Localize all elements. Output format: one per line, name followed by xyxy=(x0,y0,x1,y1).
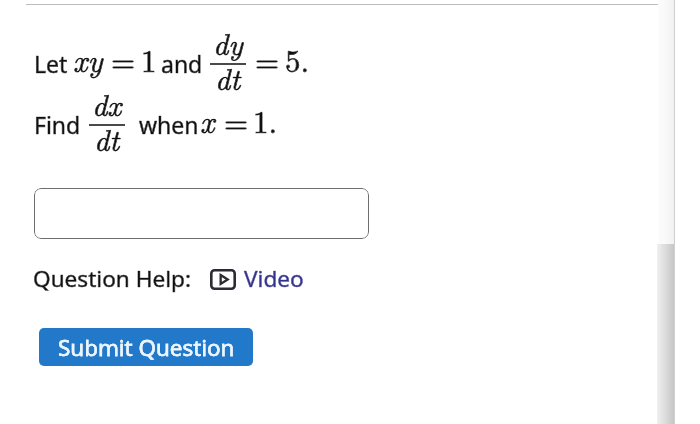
staticText: 1. xyxy=(253,98,278,142)
button[interactable]: Video xyxy=(210,263,304,294)
staticText: = xyxy=(224,98,249,142)
button[interactable]: Submit Question xyxy=(39,328,253,366)
staticText: dt xyxy=(94,117,120,159)
staticText: 5. xyxy=(285,37,310,81)
staticText: x xyxy=(200,98,215,142)
staticText: = xyxy=(111,37,136,81)
staticText: Video xyxy=(244,263,304,294)
staticText: = xyxy=(255,37,280,81)
staticText: = xyxy=(255,37,280,81)
staticText: 1. xyxy=(253,98,278,142)
staticText: 1 xyxy=(141,37,157,81)
staticText: dx xyxy=(92,82,122,124)
staticText: Video xyxy=(244,263,304,294)
staticText: when xyxy=(139,109,199,140)
staticText: xy xyxy=(73,37,103,81)
staticText: dx xyxy=(92,82,122,124)
staticText: 1 xyxy=(141,37,157,81)
staticText: dt xyxy=(94,117,120,159)
staticText: 5. xyxy=(285,37,310,81)
staticText: Let xyxy=(34,48,68,79)
staticText: and xyxy=(161,48,203,79)
staticText: Submit Question xyxy=(58,332,235,363)
staticText: x xyxy=(200,98,215,142)
staticText: = xyxy=(111,37,136,81)
staticText: Question Help: xyxy=(33,263,191,294)
staticText: Find xyxy=(34,109,81,140)
staticText: when xyxy=(139,109,199,140)
staticText: Submit Question xyxy=(58,332,235,363)
staticText: dt xyxy=(215,56,241,98)
staticText: = xyxy=(224,98,249,142)
staticText: xy xyxy=(73,37,103,81)
staticText: and xyxy=(161,48,203,79)
other: Video xyxy=(210,269,236,290)
staticText: dy xyxy=(213,21,243,63)
button[interactable] xyxy=(34,188,369,239)
staticText: Let xyxy=(34,48,68,79)
staticText: dy xyxy=(213,21,243,63)
staticText: Find xyxy=(34,109,81,140)
staticText: dt xyxy=(215,56,241,98)
staticText: Question Help: xyxy=(33,263,191,294)
